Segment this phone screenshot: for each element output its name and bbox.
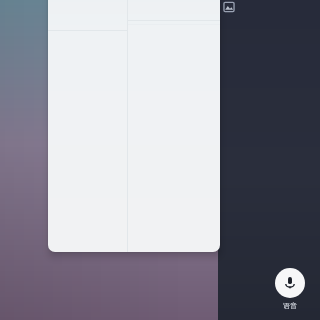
staticText: 语音: [283, 301, 297, 310]
button[interactable]: Screenshot: [222, 0, 236, 14]
button[interactable]: [48, 0, 220, 252]
button[interactable]: Voice input: [273, 266, 307, 312]
